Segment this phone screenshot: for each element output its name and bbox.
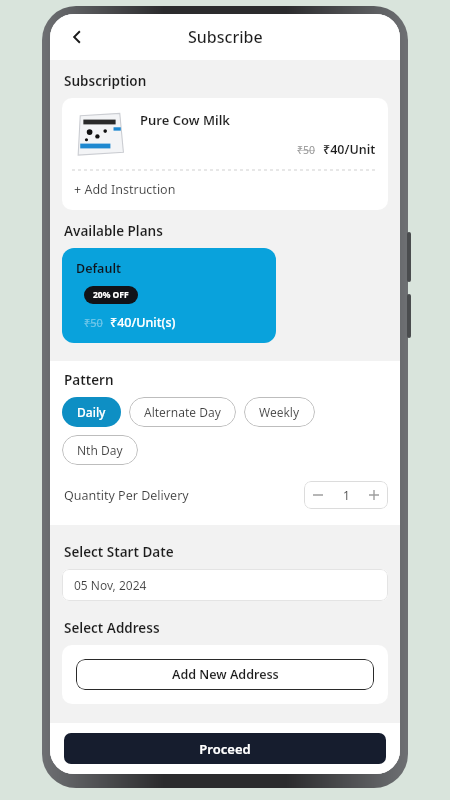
staticText: + Add Instruction [74, 181, 176, 198]
button[interactable]: Daily [62, 397, 121, 427]
staticText: Daily [77, 404, 106, 420]
button[interactable]: Default [62, 248, 276, 343]
button[interactable]: + Add Instruction [62, 171, 388, 210]
staticText: Quantity Per Delivery [64, 487, 304, 504]
staticText: Subscription [64, 72, 147, 90]
button[interactable]: Weekly [244, 397, 315, 427]
button[interactable]: Pure Cow Milk [62, 98, 388, 210]
button[interactable]: Decrease quantity [304, 481, 332, 509]
staticText: Pattern [64, 371, 114, 389]
staticText: Select Address [64, 619, 160, 637]
staticText: Pure Cow Milk [140, 111, 230, 129]
staticText: ₹50 [84, 315, 103, 330]
staticText: Select Start Date [64, 543, 174, 561]
staticText: Default [76, 260, 122, 277]
staticText: 1 [343, 487, 350, 503]
button[interactable]: Alternate Day [129, 397, 236, 427]
staticText: ₹40/Unit(s) [110, 314, 176, 331]
staticText: Available Plans [64, 222, 163, 240]
staticText: Nth Day [77, 442, 123, 458]
button[interactable]: Proceed [64, 733, 386, 764]
staticText: Alternate Day [144, 404, 221, 420]
staticText: Add New Address [172, 666, 279, 683]
staticText: ₹50 [297, 143, 316, 157]
staticText: Subscribe [188, 26, 263, 48]
button[interactable]: Back [58, 18, 96, 56]
button[interactable]: Add New Address [76, 659, 374, 690]
staticText: Weekly [259, 404, 300, 420]
staticText: Proceed [199, 740, 251, 758]
button[interactable]: Increase quantity [360, 481, 388, 509]
staticText: 20% OFF [93, 289, 129, 301]
button[interactable]: Nth Day [62, 435, 138, 465]
staticText: 05 Nov, 2024 [74, 577, 147, 593]
staticText: ₹40/Unit [323, 141, 376, 158]
button[interactable]: 05 Nov, 2024 [62, 569, 388, 601]
